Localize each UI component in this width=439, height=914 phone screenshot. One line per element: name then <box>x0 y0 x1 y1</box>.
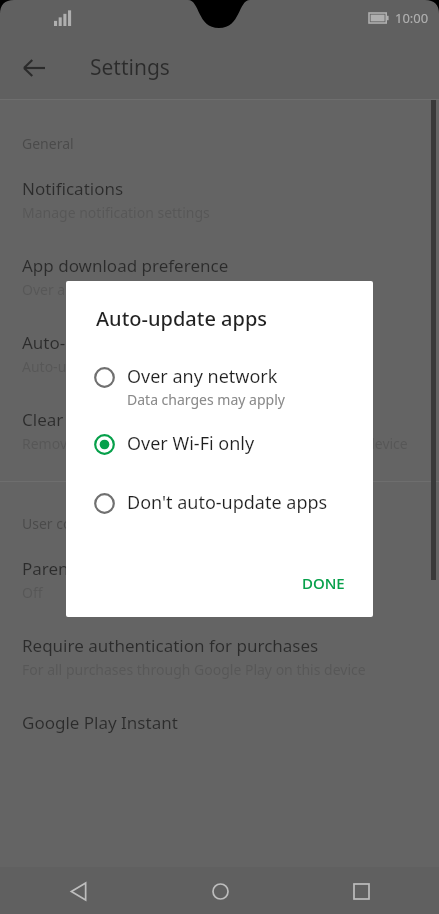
staticText: Over Wi-Fi only <box>127 431 255 456</box>
button[interactable]: Google Play Instant <box>0 711 439 734</box>
staticText: Data charges may apply <box>127 390 285 409</box>
button[interactable]: Back <box>12 46 56 90</box>
staticText: Auto-update apps over Wi-Fi only <box>22 357 240 376</box>
staticText: Google Play Instant <box>22 711 178 734</box>
staticText: App download preference <box>22 254 229 277</box>
staticText: 10:00 <box>395 9 429 27</box>
staticText: Require authentication for purchases <box>22 634 319 657</box>
staticText: General <box>22 134 74 153</box>
button[interactable]: Home <box>198 869 242 913</box>
button[interactable]: Notifications <box>0 177 439 222</box>
staticText: DONE <box>302 573 345 593</box>
staticText: Manage notification settings <box>22 203 210 222</box>
staticText: Off <box>22 583 43 602</box>
button[interactable]: Clear local search history <box>0 408 439 453</box>
button[interactable]: Auto-update apps <box>0 331 439 376</box>
staticText: Parental controls <box>22 557 158 580</box>
button[interactable]: DONE <box>294 567 353 599</box>
button[interactable]: Over any network <box>66 360 373 413</box>
staticText: Over any network <box>127 364 278 389</box>
staticText: Auto-update apps <box>22 331 165 354</box>
button[interactable]: Parental controls <box>0 557 439 602</box>
staticText: Notifications <box>22 177 124 200</box>
staticText: Clear local search history <box>22 408 222 431</box>
staticText: Settings <box>90 53 170 82</box>
button[interactable]: Recents <box>339 869 383 913</box>
staticText: User controls <box>22 514 110 533</box>
button[interactable]: Require authentication for purchases <box>0 634 439 679</box>
button[interactable]: Back <box>56 869 100 913</box>
staticText: Over any network <box>22 280 139 299</box>
staticText: Auto-update apps <box>96 305 268 332</box>
button[interactable]: Don't auto-update apps <box>66 486 373 519</box>
staticText: For all purchases through Google Play on… <box>22 660 366 679</box>
staticText: Remove the searches you have performed f… <box>22 434 408 453</box>
button[interactable]: App download preference <box>0 254 439 299</box>
staticText: Don't auto-update apps <box>127 490 328 515</box>
button[interactable]: Over Wi-Fi only <box>66 427 373 460</box>
